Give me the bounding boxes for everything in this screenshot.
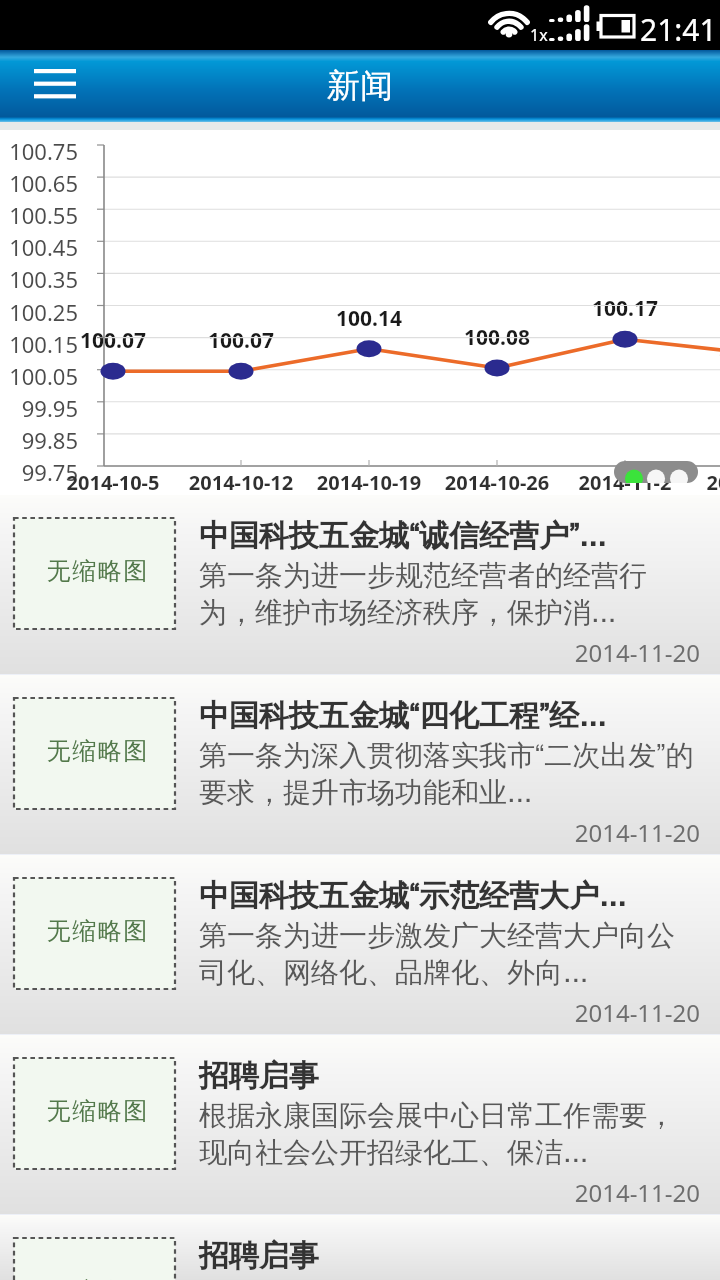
staticText: 100.25 [0, 297, 78, 327]
staticText: 100.45 [0, 232, 78, 262]
button[interactable]: 无缩略图 [0, 1215, 720, 1280]
staticText: 第一条为进一步激发广大经营大户向公司化、网络化、品牌化、外向... [199, 918, 699, 990]
staticText: 100.55 [0, 200, 78, 230]
staticText: 无缩略图 [46, 1096, 148, 1126]
staticText: 2014-11-20 [574, 996, 700, 1029]
staticText: 2014-11-2 [555, 469, 695, 496]
staticText: 无缩略图 [46, 736, 148, 766]
staticText: 2014-11-9 [683, 469, 720, 496]
staticText: 第一条为深入贯彻落实我市“二次出发”的要求，提升市场功能和业... [199, 738, 699, 810]
button[interactable]: Page indicator [614, 461, 698, 483]
staticText: 99.75 [0, 457, 78, 487]
staticText: 中国科技五金城“示范经营大户... [199, 877, 626, 915]
staticText: 100.08 [427, 323, 567, 352]
staticText: 99.95 [0, 393, 78, 423]
staticText: 中国科技五金城“四化工程”经... [199, 697, 606, 735]
button[interactable]: 无缩略图 [0, 1035, 720, 1215]
staticText: 无缩略图 [46, 1276, 148, 1280]
button[interactable]: 无缩略图 [0, 495, 720, 675]
staticText: 中国科技五金城“诚信经营户”... [199, 517, 606, 555]
staticText: 100.1 [683, 309, 720, 338]
staticText: 100.14 [299, 304, 439, 333]
staticText: 无缩略图 [46, 556, 148, 586]
staticText: 招聘启事 [199, 1057, 319, 1095]
staticText: 100.07 [43, 326, 183, 355]
staticText: 100.35 [0, 264, 78, 294]
staticText: 2014-11-20 [574, 816, 700, 849]
button[interactable]: 无缩略图 [0, 855, 720, 1035]
staticText: 第一条为进一步规范经营者的经营行为，维护市场经济秩序，保护消... [199, 558, 699, 630]
staticText: 2014-10-19 [299, 469, 439, 496]
button[interactable]: 无缩略图 [0, 675, 720, 855]
staticText: 100.17 [555, 294, 695, 323]
staticText: 2014-10-5 [43, 469, 183, 496]
staticText: 100.07 [171, 326, 311, 355]
staticText: 无缩略图 [46, 916, 148, 946]
staticText: 100.05 [0, 361, 78, 391]
staticText: 2014-11-20 [574, 636, 700, 669]
staticText: 2014-10-26 [427, 469, 567, 496]
staticText: 100.65 [0, 168, 78, 198]
staticText: 1x [530, 24, 548, 46]
staticText: 100.15 [0, 329, 78, 359]
staticText: 2014-10-12 [171, 469, 311, 496]
staticText: 99.85 [0, 425, 78, 455]
staticText: 21:41 [640, 9, 717, 50]
staticText: 招聘启事 [199, 1237, 319, 1275]
staticText: 根据永康国际会展中心日常工作需要，现向社会公开招绿化工、保洁... [199, 1098, 699, 1170]
staticText: 2014-11-20 [574, 1176, 700, 1209]
button[interactable]: Menu [12, 54, 98, 118]
staticText: 新闻 [327, 65, 393, 107]
staticText: 100.75 [0, 136, 78, 166]
